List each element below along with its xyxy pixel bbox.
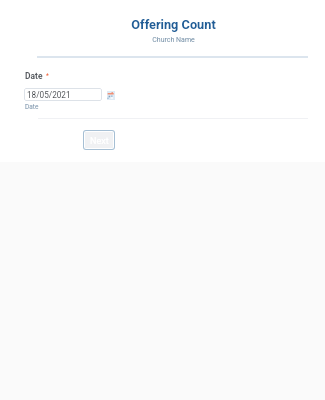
staticText: Church Name [22, 36, 325, 44]
button[interactable]: Next [85, 132, 113, 148]
staticText: Date [25, 71, 43, 81]
button[interactable]: 18/05/2021 [24, 88, 102, 101]
staticText: Date [25, 103, 39, 111]
button[interactable]: Pick date [107, 91, 115, 100]
staticText: Offering Count [22, 17, 325, 32]
staticText: 18/05/2021 [27, 90, 71, 100]
staticText: * [46, 72, 49, 80]
staticText: Next [90, 136, 109, 147]
